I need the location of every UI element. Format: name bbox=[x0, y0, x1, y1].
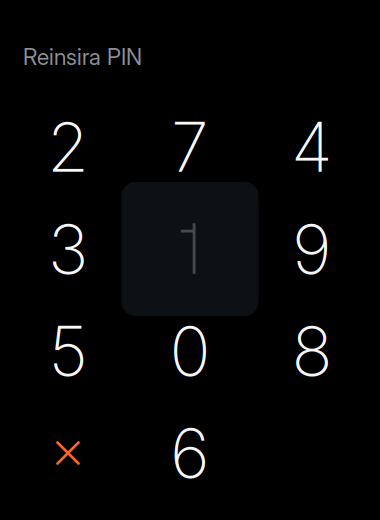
button[interactable]: 6 bbox=[129, 402, 251, 504]
staticText: 6 bbox=[170, 412, 210, 494]
staticText: 9 bbox=[292, 208, 332, 290]
button[interactable]: 5 bbox=[7, 300, 129, 402]
button[interactable]: Delete bbox=[7, 402, 129, 504]
button[interactable]: 7 bbox=[129, 96, 251, 198]
staticText: 4 bbox=[291, 106, 333, 188]
button[interactable]: 1 bbox=[129, 198, 251, 300]
staticText: Reinsira PIN bbox=[23, 43, 142, 70]
button[interactable]: 4 bbox=[251, 96, 373, 198]
button[interactable]: 2 bbox=[7, 96, 129, 198]
staticText: 0 bbox=[169, 310, 210, 392]
button[interactable]: 8 bbox=[251, 300, 373, 402]
staticText: 2 bbox=[47, 106, 89, 188]
staticText: 3 bbox=[48, 208, 88, 290]
staticText: 7 bbox=[171, 106, 209, 188]
staticText: 5 bbox=[48, 310, 87, 392]
button[interactable]: 0 bbox=[129, 300, 251, 402]
button[interactable]: 3 bbox=[7, 198, 129, 300]
button[interactable]: 9 bbox=[251, 198, 373, 300]
staticText: 8 bbox=[291, 310, 332, 392]
